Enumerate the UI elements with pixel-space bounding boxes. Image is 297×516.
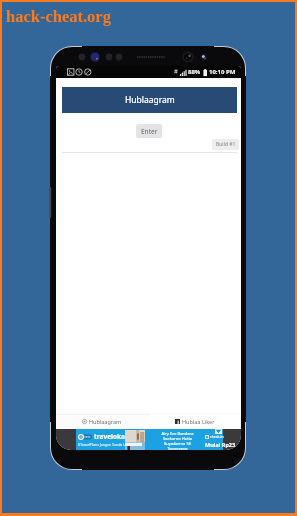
button[interactable]: Hublaagram [56, 413, 148, 429]
staticText: hack-cheat.org [6, 7, 111, 25]
button[interactable]: traveloka [76, 429, 223, 450]
staticText: check-in [210, 434, 224, 439]
staticText: Enter [141, 127, 158, 136]
staticText: Mulai Rp23... [205, 441, 240, 448]
staticText: traveloka [94, 432, 126, 441]
staticText: #TravelPlans Jangan Tunda Liburan [78, 442, 136, 447]
staticText: Hublaagram [89, 418, 122, 425]
staticText: 10:10 PM [209, 68, 236, 76]
button[interactable]: Enter [136, 124, 162, 138]
staticText: 88% [188, 68, 201, 76]
staticText: Build #1 [216, 141, 236, 148]
staticText: Airy Eco Bandara Soekarno Hatta Suyadarm… [150, 431, 205, 450]
button[interactable]: Hublaa Liker [148, 413, 241, 429]
staticText: Hublaa Liker [182, 418, 215, 425]
button[interactable]: Hublaagram [62, 87, 237, 113]
staticText: Hublaagram [125, 94, 175, 106]
